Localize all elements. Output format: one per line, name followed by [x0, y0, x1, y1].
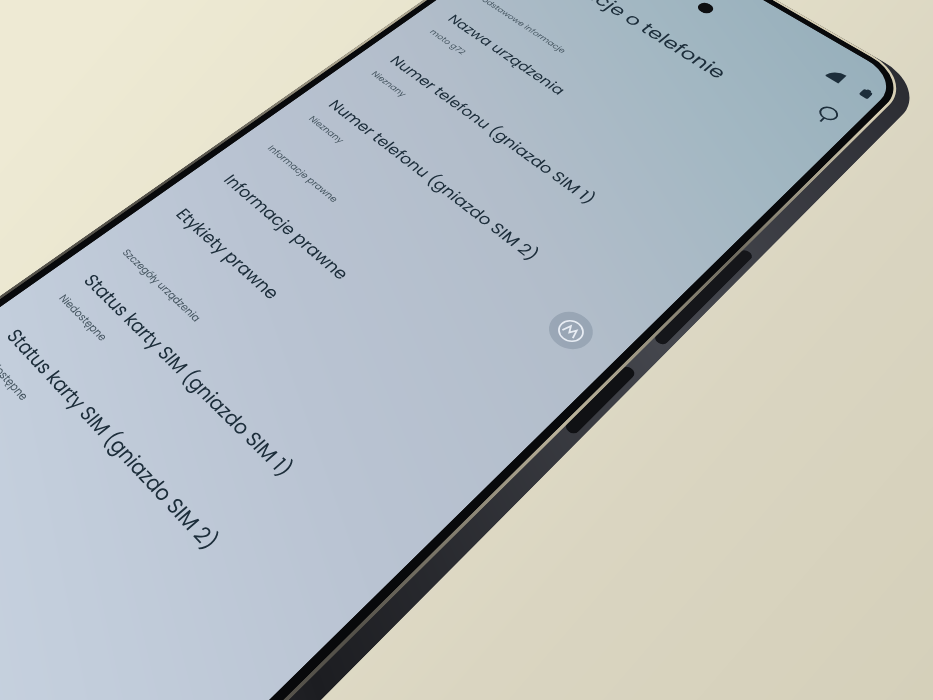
- button[interactable]: Numer telefonu (gniazdo SIM 1): [367, 40, 620, 224]
- button[interactable]: Nazwa urządzenia: [426, 0, 589, 112]
- staticText: Informacje o telefonie: [524, 0, 733, 84]
- staticText: Niedostępne: [0, 347, 33, 403]
- staticText: moto g72: [427, 27, 469, 56]
- button[interactable]: Status karty SIM (gniazdo SIM 1): [58, 253, 322, 504]
- button[interactable]: Status karty SIM (gniazdo SIM 2): [0, 306, 248, 580]
- button[interactable]: Głośność: [652, 248, 754, 347]
- button[interactable]: Zasilanie: [563, 364, 637, 436]
- staticText: Informacje prawne: [265, 143, 342, 205]
- button[interactable]: Szukaj: [798, 94, 857, 138]
- staticText: Szczegóły urządzenia: [119, 246, 205, 325]
- staticText: Niedostępne: [56, 291, 112, 344]
- staticText: Nieznany: [369, 69, 410, 98]
- staticText: Podstawowe informacje: [476, 0, 569, 55]
- staticText: Nieznany: [306, 113, 347, 145]
- button[interactable]: Informacje prawne: [199, 156, 375, 302]
- button[interactable]: Numer telefonu (gniazdo SIM 2): [305, 83, 564, 282]
- button[interactable]: Etykiety prawne: [151, 189, 306, 322]
